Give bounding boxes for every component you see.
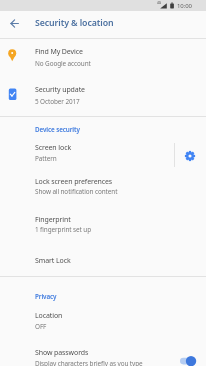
staticText: No Google account — [35, 59, 91, 68]
staticText: Lock screen preferences — [35, 177, 113, 187]
staticText: Smart Lock — [35, 256, 71, 266]
button[interactable] — [7, 17, 22, 30]
button[interactable]: Show passwords — [0, 342, 206, 366]
button[interactable]: Screen lock — [0, 138, 206, 172]
staticText: OFF — [35, 322, 47, 331]
button[interactable]: Smart Lock — [0, 248, 206, 276]
staticText: Show all notification content — [35, 187, 118, 196]
button[interactable]: Find My Device — [0, 40, 206, 78]
staticText: 5 October 2017 — [35, 97, 80, 106]
staticText: Pattern — [35, 154, 57, 163]
button[interactable]: Security update — [0, 78, 206, 116]
staticText: Privacy — [35, 292, 57, 301]
staticText: Display characters briefly as you type — [35, 359, 143, 366]
button[interactable] — [181, 147, 199, 165]
button[interactable]: Location — [0, 306, 206, 342]
staticText: 1 fingerprint set up — [35, 225, 92, 234]
button[interactable]: Fingerprint — [0, 210, 206, 248]
staticText: Show passwords — [35, 348, 89, 358]
staticText: Security update — [35, 85, 85, 95]
staticText: Fingerprint — [35, 215, 71, 225]
staticText: 4G — [157, 1, 161, 5]
staticText: Device security — [35, 125, 80, 134]
staticText: Screen lock — [35, 143, 72, 153]
staticText: Find My Device — [35, 47, 83, 57]
staticText: Location — [35, 311, 63, 321]
staticText: Security & location — [35, 17, 114, 29]
button[interactable]: Lock screen preferences — [0, 172, 206, 210]
staticText: 10:00 — [177, 2, 192, 10]
